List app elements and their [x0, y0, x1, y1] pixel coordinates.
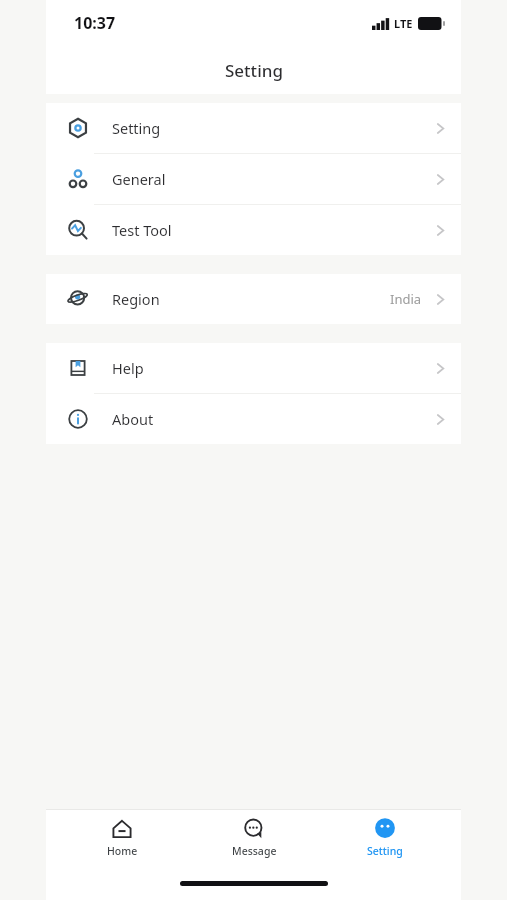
button[interactable]: Test Tool: [46, 205, 461, 255]
other: Home: [111, 818, 133, 840]
button[interactable]: General: [46, 154, 461, 204]
staticText: LTE: [394, 16, 413, 31]
staticText: Message: [232, 844, 277, 858]
staticText: General: [112, 169, 436, 189]
button[interactable]: Home: [67, 814, 177, 862]
staticText: 10:37: [74, 12, 116, 34]
button[interactable]: Setting: [46, 103, 461, 153]
staticText: India: [390, 290, 422, 308]
button[interactable]: Help: [46, 343, 461, 393]
staticText: Setting: [367, 844, 403, 858]
staticText: Help: [112, 358, 436, 378]
staticText: Setting: [112, 118, 436, 138]
button[interactable]: Region: [46, 274, 461, 324]
staticText: About: [112, 409, 436, 429]
button[interactable]: Setting: [330, 814, 440, 862]
staticText: Region: [112, 289, 390, 309]
button[interactable]: Message: [199, 814, 309, 862]
staticText: Setting: [225, 59, 283, 82]
button[interactable]: About: [46, 394, 461, 444]
other: Setting: [374, 818, 396, 840]
other: Message: [243, 818, 265, 840]
staticText: Home: [107, 844, 138, 858]
staticText: Test Tool: [112, 220, 436, 240]
